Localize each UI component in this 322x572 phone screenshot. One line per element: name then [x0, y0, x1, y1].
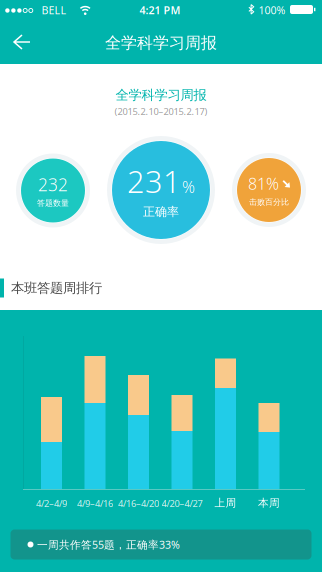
- staticText: %: [182, 176, 195, 197]
- staticText: BELL: [41, 3, 66, 17]
- staticText: 正确率: [143, 204, 179, 219]
- staticText: 4/16–4/20: [118, 497, 159, 510]
- staticText: 81%: [248, 173, 279, 194]
- staticText: 4/2–4/9: [36, 497, 67, 510]
- button[interactable]: Back: [0, 29, 40, 55]
- staticText: 答题数量: [37, 198, 69, 208]
- staticText: 击败百分比: [249, 197, 289, 207]
- staticText: (2015.2.10–2015.2.17): [114, 105, 207, 118]
- staticText: 全学科学习周报: [105, 33, 217, 53]
- staticText: 232: [38, 173, 68, 196]
- staticText: 一周共作答55题，正确率33%: [37, 537, 180, 552]
- staticText: 4/20–4/27: [161, 497, 202, 510]
- staticText: 本周: [258, 496, 280, 509]
- staticText: 4:21 PM: [139, 3, 180, 17]
- staticText: 231: [127, 161, 181, 201]
- staticText: 上周: [214, 496, 236, 509]
- staticText: 4/9–4/16: [77, 497, 113, 510]
- staticText: 本班答题周排行: [11, 280, 102, 296]
- staticText: 全学科学习周报: [115, 87, 206, 103]
- staticText: 100%: [258, 3, 285, 17]
